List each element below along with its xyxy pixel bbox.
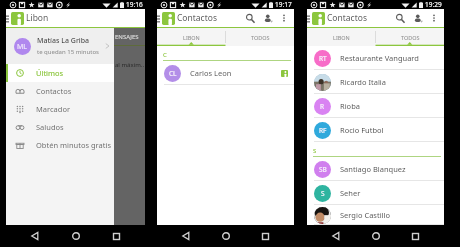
staticText: Libon [26,12,49,24]
button[interactable]: Open navigation drawer [157,9,162,27]
button[interactable]: Últimos [6,64,114,82]
button[interactable]: RT [307,46,444,70]
staticText: Matías La Griba [37,36,90,46]
staticText: Rocio Futbol [340,125,384,135]
button[interactable]: R [307,94,444,118]
button[interactable]: LIBON [157,28,225,46]
button[interactable]: Recent apps [105,225,127,247]
button[interactable]: RF [307,118,444,142]
button[interactable]: Sergio Castillo [307,205,444,225]
staticText: RT [319,54,327,63]
staticText: Marcador [36,104,71,114]
staticText: Saludos [36,122,64,132]
staticText: Contactos [327,12,367,24]
button[interactable]: Back [175,225,197,247]
staticText: Sergio Castillo [340,210,390,220]
button[interactable]: Recent apps [254,225,276,247]
button[interactable]: SB [307,157,444,181]
staticText: 19:16 [126,0,143,9]
button[interactable]: Back [325,225,347,247]
staticText: ENSAJES [115,33,139,41]
staticText: Obtén minutos gratis [36,140,111,150]
staticText: LIBON [333,34,350,41]
button[interactable]: Home [65,225,87,247]
staticText: C [163,51,167,59]
button[interactable]: Search [391,9,409,27]
button[interactable]: Recent apps [404,225,426,247]
button[interactable]: Ricardo Italia [307,70,444,94]
button[interactable]: TODOS [376,28,444,46]
button[interactable]: Add contact [259,9,277,27]
staticText: S [313,147,317,155]
staticText: TODOS [401,34,420,41]
staticText: S [321,189,325,198]
button[interactable]: Obtén minutos gratis [6,136,114,154]
staticText: 19:29 [425,0,442,9]
staticText: Últimos [36,68,64,78]
button[interactable]: Contactos [6,82,114,100]
staticText: Contactos [36,86,72,96]
staticText: ML [17,42,28,52]
button[interactable]: Open navigation drawer [6,9,11,27]
button[interactable]: Home [365,225,387,247]
staticText: Restaurante Vanguard [340,53,419,63]
button[interactable]: Open navigation drawer [307,9,312,27]
staticText: te quedan 15 minutos [37,48,99,56]
button[interactable]: Home [215,225,237,247]
button[interactable]: More options [427,11,441,25]
staticText: CL [169,69,177,78]
button[interactable]: CL [157,61,294,85]
staticText: SB [319,165,327,174]
staticText: Rioba [340,101,360,111]
staticText: Carlos Leon [190,68,232,78]
staticText: R [320,102,325,111]
staticText: 19:17 [275,0,292,9]
button[interactable]: Saludos [6,118,114,136]
staticText: LIBON [183,34,200,41]
staticText: Contactos [177,12,217,24]
button[interactable]: Search [241,9,259,27]
button[interactable]: S [307,181,444,205]
staticText: Santiago Blanquez [340,164,406,174]
button[interactable]: Marcador [6,100,114,118]
button[interactable]: TODOS [226,28,294,46]
button[interactable]: ML [6,28,114,64]
staticText: Seher [340,188,361,198]
staticText: TODOS [251,34,270,41]
staticText: RF [319,126,327,135]
staticText: Ricardo Italia [340,77,386,87]
button[interactable]: More options [277,11,291,25]
staticText: al máxim.. [115,61,144,69]
button[interactable]: LIBON [307,28,375,46]
button[interactable]: Back [24,225,46,247]
button[interactable]: Add contact [409,9,427,27]
